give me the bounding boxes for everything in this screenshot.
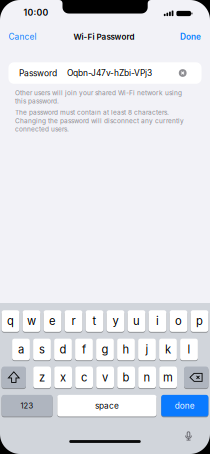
- button[interactable]: Done: [165, 30, 201, 44]
- button[interactable]: z: [33, 367, 51, 388]
- staticText: x: [60, 371, 66, 384]
- button[interactable]: s: [33, 339, 51, 360]
- staticText: h: [122, 343, 129, 356]
- button[interactable]: Cancel: [8, 30, 48, 44]
- staticText: o: [175, 314, 182, 328]
- staticText: b: [123, 371, 130, 384]
- staticText: z: [39, 371, 45, 384]
- button[interactable]: r: [65, 310, 82, 332]
- button[interactable]: b: [117, 367, 135, 388]
- staticText: p: [196, 314, 203, 328]
- button[interactable]: w: [23, 310, 40, 332]
- staticText: connected users.: [15, 125, 69, 133]
- staticText: e: [49, 314, 56, 328]
- button[interactable]: p: [191, 310, 208, 332]
- button[interactable]: e: [44, 310, 61, 332]
- staticText: 10:00: [23, 7, 48, 18]
- staticText: d: [59, 343, 66, 356]
- button[interactable]: space: [57, 395, 156, 416]
- button[interactable]: f: [75, 339, 93, 360]
- staticText: Done: [180, 32, 201, 42]
- button[interactable]: Delete: [184, 367, 208, 388]
- button[interactable]: Password: [8, 62, 201, 84]
- staticText: Password: [19, 68, 57, 78]
- staticText: The password must contain at least 8 cha…: [15, 108, 169, 116]
- button[interactable]: c: [75, 367, 93, 388]
- staticText: space: [95, 401, 119, 411]
- button[interactable]: m: [159, 367, 177, 388]
- staticText: j: [145, 343, 148, 356]
- button[interactable]: k: [159, 339, 177, 360]
- button[interactable]: Clear text: [179, 69, 187, 77]
- staticText: n: [144, 371, 151, 384]
- staticText: f: [82, 343, 86, 356]
- staticText: s: [39, 343, 45, 356]
- staticText: done: [175, 401, 195, 411]
- button[interactable]: g: [96, 339, 114, 360]
- button[interactable]: t: [86, 310, 103, 332]
- staticText: Cancel: [8, 32, 36, 42]
- staticText: Wi-Fi Password: [73, 32, 134, 42]
- button[interactable]: i: [149, 310, 166, 332]
- button[interactable]: Shift: [2, 367, 26, 388]
- staticText: this password.: [15, 97, 59, 105]
- button[interactable]: o: [170, 310, 187, 332]
- button[interactable]: q: [2, 310, 19, 332]
- button[interactable]: Dictation: [183, 429, 193, 441]
- button[interactable]: 123: [2, 395, 53, 416]
- button[interactable]: d: [54, 339, 72, 360]
- staticText: Other users will join your shared Wi-Fi …: [15, 89, 182, 97]
- button[interactable]: n: [138, 367, 156, 388]
- staticText: a: [18, 343, 24, 356]
- staticText: w: [27, 314, 36, 328]
- staticText: v: [102, 371, 108, 384]
- button[interactable]: x: [54, 367, 72, 388]
- button[interactable]: l: [180, 339, 198, 360]
- staticText: y: [112, 314, 118, 328]
- staticText: i: [156, 314, 159, 328]
- button[interactable]: a: [12, 339, 30, 360]
- staticText: 123: [21, 401, 34, 410]
- staticText: m: [163, 371, 173, 384]
- button[interactable]: done: [161, 395, 208, 416]
- staticText: t: [92, 314, 96, 328]
- button[interactable]: v: [96, 367, 114, 388]
- staticText: g: [101, 343, 108, 356]
- staticText: q: [7, 314, 14, 328]
- staticText: k: [165, 343, 171, 356]
- staticText: u: [133, 314, 140, 328]
- staticText: Changing the password will disconnect an…: [15, 117, 184, 125]
- button[interactable]: y: [107, 310, 124, 332]
- button[interactable]: j: [138, 339, 156, 360]
- button[interactable]: h: [117, 339, 135, 360]
- staticText: l: [187, 343, 190, 356]
- staticText: c: [81, 371, 87, 384]
- staticText: r: [71, 314, 75, 328]
- staticText: Oqbn-J47v-hZbi-VPj3: [67, 68, 152, 78]
- button[interactable]: u: [128, 310, 145, 332]
